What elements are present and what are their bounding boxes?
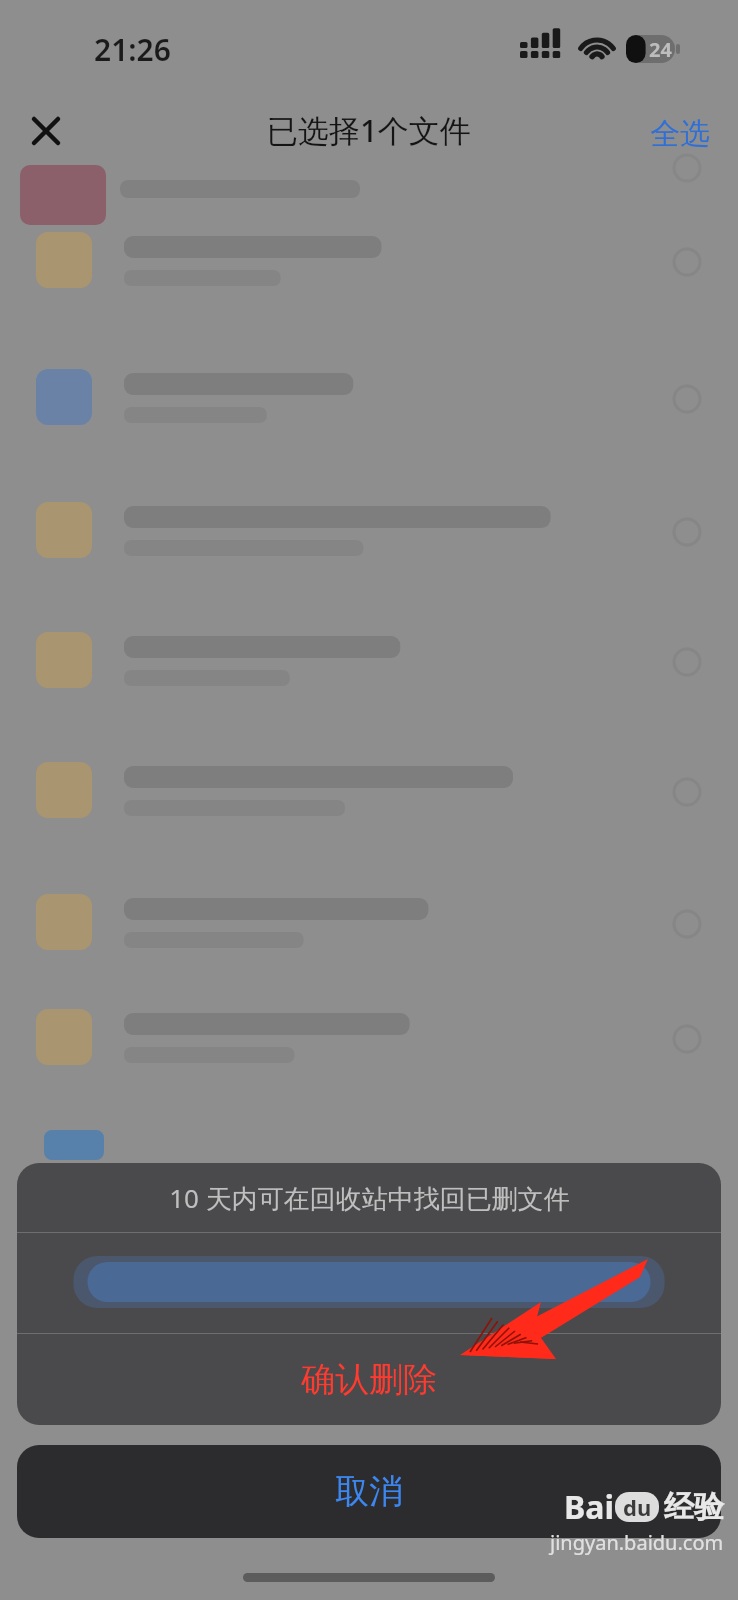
staticText: du xyxy=(623,1492,652,1522)
button[interactable] xyxy=(17,1233,721,1333)
button[interactable]: 全选 xyxy=(644,107,716,161)
staticText: Bai xyxy=(564,1485,615,1529)
staticText: 已选择1个文件 xyxy=(267,109,471,151)
staticText: 21:26 xyxy=(94,29,171,70)
staticText: jingyan.baidu.com xyxy=(550,1529,724,1556)
staticText: 10 天内可在回收站中找回已删文件 xyxy=(169,1180,570,1216)
button[interactable]: 确认删除 xyxy=(17,1334,721,1425)
staticText: 全选 xyxy=(650,115,710,153)
button[interactable]: 取消 xyxy=(17,1445,721,1538)
staticText: 确认删除 xyxy=(301,1358,437,1401)
staticText: 24 xyxy=(649,36,672,63)
staticText: 取消 xyxy=(335,1470,403,1513)
button[interactable]: Close xyxy=(18,103,74,159)
staticText: 经验 xyxy=(664,1488,724,1526)
